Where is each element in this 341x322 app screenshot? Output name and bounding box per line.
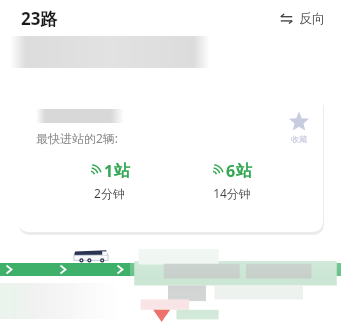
staticText: 站 <box>236 161 252 181</box>
staticText: 23路 <box>21 7 58 30</box>
button[interactable]: 最快进站的2辆: <box>18 95 323 232</box>
button[interactable]: 收藏 <box>284 109 314 146</box>
button[interactable]: 1 <box>79 158 140 203</box>
button[interactable]: 6 <box>201 158 262 203</box>
staticText: 6 <box>226 160 236 182</box>
button[interactable]: 反向 <box>277 6 327 30</box>
staticText: 站 <box>114 161 130 181</box>
staticText: 最快进站的2辆: <box>36 130 119 146</box>
staticText: 收藏 <box>291 134 307 144</box>
staticText: 1 <box>104 160 114 182</box>
staticText: 2分钟 <box>94 185 125 201</box>
staticText: 反向 <box>299 10 325 26</box>
staticText: 14分钟 <box>213 185 251 201</box>
